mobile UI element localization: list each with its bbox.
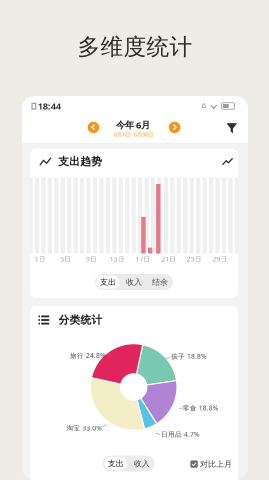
staticText: 旅行 24.8%	[70, 351, 106, 360]
button[interactable]: Next month	[167, 119, 183, 135]
button[interactable]: 结余	[147, 274, 173, 290]
staticText: 今年 6月	[116, 119, 150, 131]
staticText: 17日	[135, 255, 150, 263]
button[interactable]: 收入	[129, 456, 155, 471]
button[interactable]: Previous month	[85, 119, 101, 135]
staticText: 孩子 18.8%	[171, 352, 207, 361]
staticText: 收入	[134, 459, 150, 468]
staticText: 日用品 4.7%	[161, 430, 200, 439]
staticText: 5日	[60, 255, 71, 263]
staticText: 25日	[187, 255, 202, 263]
staticText: 支出	[108, 459, 124, 468]
staticText: 结余	[152, 277, 168, 287]
staticText: 对比上月	[200, 459, 232, 469]
staticText: 分类统计	[59, 313, 103, 326]
staticText: 收入	[126, 277, 142, 287]
button[interactable]: 收入	[121, 274, 147, 290]
staticText: 21日	[161, 255, 176, 263]
staticText: 6月1日 - 6月30日	[114, 131, 153, 138]
staticText: 支出趋势	[58, 155, 102, 168]
button[interactable]: Filter	[224, 120, 240, 136]
staticText: 1日	[35, 255, 46, 263]
staticText: 多维度统计	[77, 33, 192, 61]
staticText: 29日	[213, 255, 228, 263]
staticText: 淘宝 33.0%	[66, 424, 102, 432]
staticText: 18:44	[38, 100, 61, 112]
staticText: 9日	[86, 255, 97, 263]
staticText: 支出	[100, 277, 116, 287]
button[interactable]: 对比上月	[190, 459, 232, 469]
staticText: 13日	[110, 255, 125, 263]
button[interactable]: 支出	[103, 456, 129, 471]
staticText: 零食 18.8%	[183, 403, 219, 412]
button[interactable]: 支出	[95, 274, 121, 290]
